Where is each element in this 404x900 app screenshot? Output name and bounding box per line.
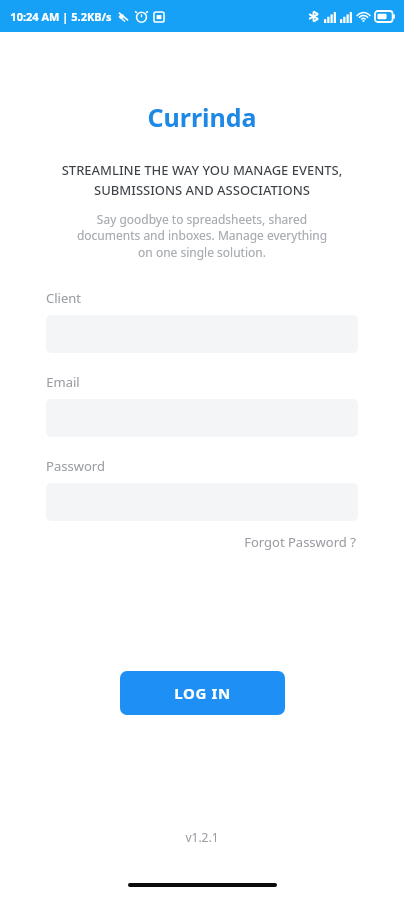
staticText: LOG IN [174,683,231,703]
staticText: Forgot Password ? [244,533,356,551]
staticText: Say goodbye to spreadsheets, shared docu… [20,211,384,261]
staticText: Client [46,289,81,307]
button[interactable]: Forgot Password ? [242,529,358,555]
staticText: 10:24 AM | 5.2KB/s [10,9,112,24]
staticText: STREAMLINE THE WAY YOU MANAGE EVENTS, SU… [20,161,384,199]
staticText: v1.2.1 [185,829,219,845]
button[interactable]: LOG IN [120,671,285,715]
staticText: Password [46,457,105,475]
staticText: Email [46,373,80,391]
staticText: Currinda [147,100,257,134]
